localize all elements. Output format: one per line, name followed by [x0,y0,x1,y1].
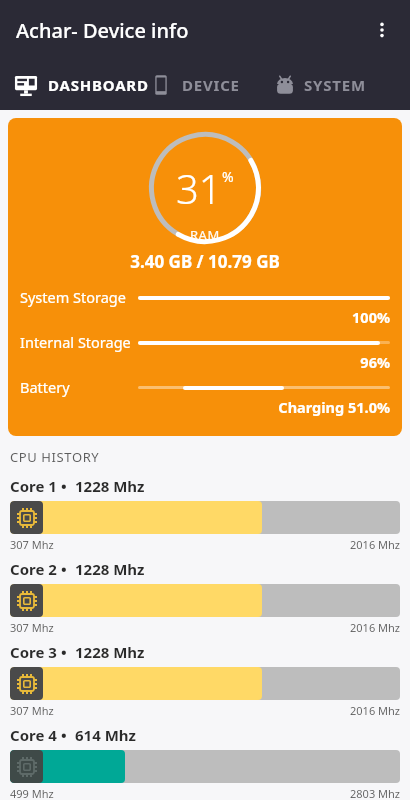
staticText: DEVICE [182,75,240,95]
staticText: SYSTEM [304,75,366,95]
staticText: 100% [20,307,390,327]
staticText: System Storage [20,287,138,307]
staticText: • [57,559,75,579]
staticText: Battery [20,377,138,397]
staticText: 2016 Mhz [350,537,400,552]
button[interactable]: More options [360,8,404,52]
staticText: CPU HISTORY [10,448,100,466]
staticText: 307 Mhz [10,620,54,635]
staticText: % [222,167,234,186]
staticText: Core 2 [10,559,57,579]
staticText: Achar- Device info [16,17,189,44]
staticText: 1228 Mhz [75,559,145,579]
staticText: 96% [20,352,390,372]
staticText: 2803 Mhz [350,786,400,800]
button[interactable]: SYSTEM [274,60,410,110]
staticText: Charging 51.0% [20,397,390,417]
staticText: Core 4 [10,725,57,745]
staticText: 31 [176,161,222,215]
button[interactable]: DEVICE [150,60,274,110]
staticText: 499 Mhz [10,786,54,800]
staticText: RAM [190,226,220,244]
staticText: • [57,476,75,496]
button[interactable]: Core 2 [10,559,400,642]
staticText: 1228 Mhz [75,642,145,662]
staticText: Core 1 [10,476,57,496]
staticText: • [57,642,75,662]
staticText: 2016 Mhz [350,620,400,635]
button[interactable]: Core 1 [10,476,400,559]
staticText: • [57,725,75,745]
staticText: Internal Storage [20,332,138,352]
button[interactable]: Core 3 [10,642,400,725]
staticText: 1228 Mhz [75,476,145,496]
staticText: Core 3 [10,642,57,662]
staticText: 307 Mhz [10,537,54,552]
button[interactable]: 31 [8,118,402,436]
staticText: DASHBOARD [48,75,149,95]
staticText: 307 Mhz [10,703,54,718]
staticText: 3.40 GB / 10.79 GB [8,250,402,273]
button[interactable]: Core 4 [10,725,400,800]
button[interactable]: DASHBOARD [0,60,150,110]
staticText: 614 Mhz [75,725,136,745]
staticText: 2016 Mhz [350,703,400,718]
